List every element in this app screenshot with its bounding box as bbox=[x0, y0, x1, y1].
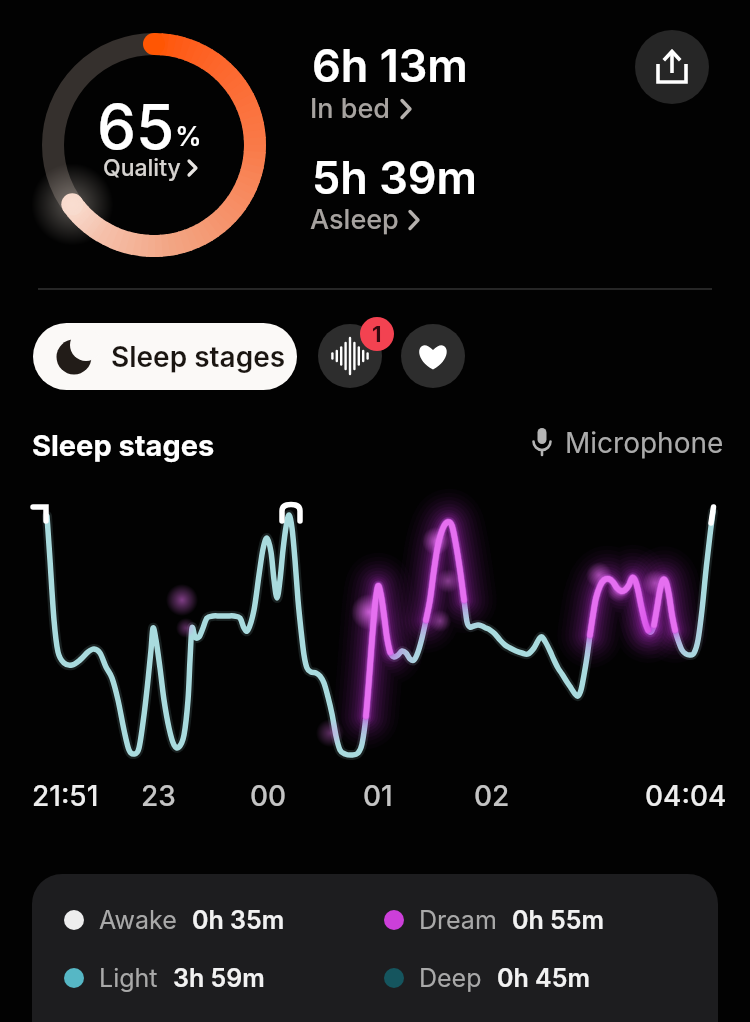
staticText: Quality bbox=[103, 154, 181, 182]
staticText: 3h 59m bbox=[173, 963, 265, 993]
button[interactable] bbox=[401, 324, 465, 388]
staticText: 0h 35m bbox=[192, 905, 285, 935]
button[interactable]: Deep bbox=[384, 958, 590, 998]
staticText: 0h 45m bbox=[497, 963, 590, 993]
staticText: % bbox=[175, 120, 202, 153]
button[interactable]: Asleep bbox=[310, 203, 420, 236]
staticText: Asleep bbox=[310, 203, 399, 236]
staticText: Microphone bbox=[565, 426, 724, 460]
staticText: 00 bbox=[250, 779, 287, 813]
button[interactable]: Microphone bbox=[531, 426, 724, 460]
button[interactable]: Dream bbox=[384, 900, 605, 940]
staticText: Sleep stages bbox=[32, 428, 215, 463]
staticText: In bed bbox=[310, 92, 391, 125]
staticText: 21:51 bbox=[32, 779, 99, 813]
button[interactable]: Sleep stages bbox=[33, 323, 297, 390]
staticText: Deep bbox=[419, 963, 482, 993]
staticText: 23 bbox=[141, 779, 176, 813]
button[interactable] bbox=[635, 30, 709, 104]
button[interactable]: In bed bbox=[310, 92, 412, 125]
button[interactable] bbox=[318, 324, 382, 388]
staticText: Sleep stages bbox=[111, 340, 286, 374]
staticText: Light bbox=[99, 963, 158, 993]
button[interactable]: 65 bbox=[39, 30, 269, 260]
staticText: 65 bbox=[97, 89, 175, 164]
button[interactable]: Awake bbox=[64, 900, 285, 940]
staticText: 01 bbox=[363, 779, 393, 813]
staticText: 04:04 bbox=[645, 779, 727, 813]
staticText: 5h 39m bbox=[312, 150, 478, 204]
button[interactable]: Light bbox=[64, 958, 265, 998]
staticText: 6h 13m bbox=[312, 38, 468, 92]
staticText: Awake bbox=[99, 905, 177, 935]
staticText: 1 bbox=[372, 321, 382, 348]
staticText: 0h 55m bbox=[512, 905, 605, 935]
staticText: 02 bbox=[474, 779, 510, 813]
staticText: Dream bbox=[419, 905, 497, 935]
